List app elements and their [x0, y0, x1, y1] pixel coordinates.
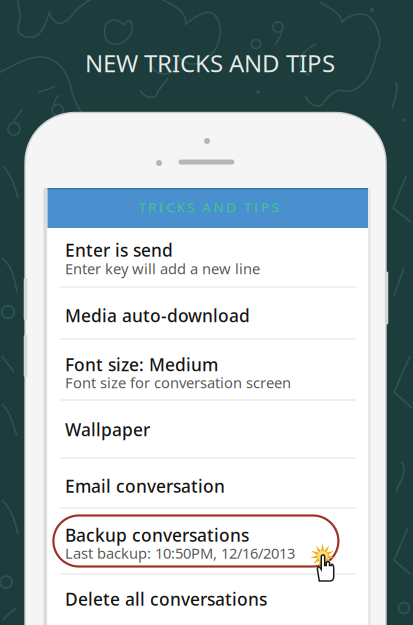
- button[interactable]: Font size: Medium: [47, 339, 368, 400]
- staticText: Media auto-download: [65, 304, 250, 327]
- staticText: Font size for conversation screen: [65, 373, 291, 392]
- staticText: Wallpaper: [65, 418, 150, 441]
- staticText: TRICKS AND TIPS: [139, 198, 279, 216]
- staticText: Font size: Medium: [65, 353, 218, 376]
- button[interactable]: Wallpaper: [47, 400, 368, 458]
- staticText: Email conversation: [65, 474, 225, 497]
- button[interactable]: Backup conversations: [47, 508, 368, 574]
- staticText: Enter key will add a new line: [65, 259, 260, 278]
- staticText: NEW TRICKS AND TIPS: [85, 47, 335, 79]
- button[interactable]: Media auto-download: [47, 287, 368, 339]
- button[interactable]: Delete all conversations: [47, 574, 368, 625]
- button[interactable]: Enter is send: [47, 228, 368, 287]
- staticText: Delete all conversations: [65, 587, 267, 610]
- staticText: Last backup: 10:50PM, 12/16/2013: [65, 543, 295, 563]
- button[interactable]: Email conversation: [47, 458, 368, 508]
- staticText: Enter is send: [65, 238, 173, 261]
- staticText: Backup conversations: [65, 523, 249, 546]
- button[interactable]: TRICKS AND TIPS: [47, 188, 368, 228]
